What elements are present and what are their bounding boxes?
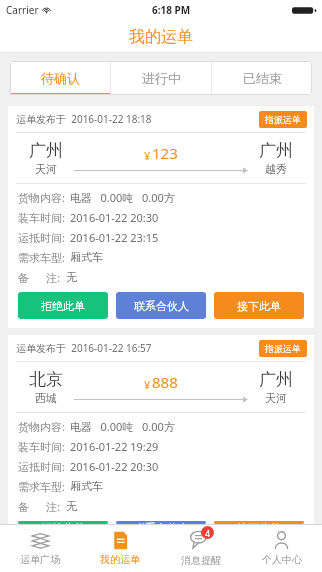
button[interactable]: 指派运单: [259, 111, 307, 128]
button[interactable]: 进行中: [111, 61, 211, 95]
staticText: 2016-01-22 20:30: [70, 210, 159, 225]
button[interactable]: 我的运单: [80, 524, 160, 572]
button[interactable]: 运单广场: [0, 524, 80, 572]
button[interactable]: 已结束: [212, 61, 312, 95]
staticText: 4: [205, 527, 211, 539]
staticText: 拒绝此单: [41, 299, 85, 313]
staticText: ¥: [144, 148, 151, 163]
staticText: 运单发布于 2016-01-22 16:57: [16, 341, 152, 355]
staticText: 2016-01-22 23:15: [70, 230, 159, 245]
staticText: 联系合伙人: [134, 521, 189, 524]
staticText: 接下此单: [237, 299, 281, 313]
staticText: 2016-01-22 19:29: [70, 439, 159, 454]
staticText: 电器 0.00吨 0.00方: [70, 190, 175, 205]
staticText: Carrier: [6, 3, 39, 17]
staticText: 指派运单: [265, 343, 301, 354]
staticText: 待确认: [41, 70, 80, 86]
staticText: 888: [152, 372, 178, 392]
staticText: 123: [152, 143, 178, 163]
staticText: 6:18 PM: [152, 3, 191, 17]
button[interactable]: 联系合伙人: [116, 521, 206, 524]
button[interactable]: 接下此单: [214, 521, 304, 524]
button[interactable]: 个人中心: [241, 524, 322, 572]
staticText: 个人中心: [262, 553, 302, 566]
staticText: 货物内容:: [18, 190, 65, 205]
staticText: 无: [66, 499, 77, 513]
staticText: 厢式车: [70, 479, 103, 493]
staticText: ¥: [144, 377, 151, 392]
staticText: 我的运单: [129, 27, 193, 47]
staticText: 天河: [265, 391, 287, 405]
staticText: 电器 0.00吨 0.00方: [70, 419, 175, 434]
staticText: 备 注:: [18, 499, 61, 514]
staticText: 备 注:: [18, 270, 61, 285]
staticText: 装车时间:: [18, 439, 65, 454]
staticText: 运抵时间:: [18, 230, 65, 245]
button[interactable]: 拒绝此单: [18, 521, 108, 524]
button[interactable]: 待确认: [10, 61, 110, 95]
staticText: 运抵时间:: [18, 459, 65, 474]
staticText: 厢式车: [70, 250, 103, 264]
staticText: 运单发布于 2016-01-22 18:18: [16, 112, 152, 126]
button[interactable]: 运单发布于 2016-01-22 18:18: [8, 106, 314, 328]
staticText: 消息提醒: [181, 554, 221, 567]
staticText: 广州: [259, 140, 293, 161]
staticText: 广州: [29, 140, 63, 161]
staticText: 货物内容:: [18, 419, 65, 434]
button[interactable]: 拒绝此单: [18, 292, 108, 319]
staticText: 无: [66, 270, 77, 284]
button[interactable]: 运单发布于 2016-01-22 16:57: [8, 335, 314, 524]
staticText: 广州: [259, 369, 293, 390]
staticText: 指派运单: [265, 114, 301, 125]
button[interactable]: 消息提醒: [160, 524, 241, 572]
staticText: 需求车型:: [18, 250, 65, 265]
staticText: 进行中: [142, 70, 181, 86]
staticText: 拒绝此单: [41, 521, 85, 524]
staticText: 越秀: [265, 162, 287, 176]
staticText: 已结束: [243, 70, 282, 86]
staticText: 北京: [29, 369, 63, 390]
staticText: 天河: [35, 162, 57, 176]
button[interactable]: 指派运单: [259, 340, 307, 357]
staticText: 装车时间:: [18, 210, 65, 225]
staticText: 需求车型:: [18, 479, 65, 494]
staticText: 2016-01-22 20:30: [70, 459, 159, 474]
staticText: 我的运单: [100, 553, 140, 566]
staticText: 西城: [35, 391, 57, 405]
staticText: 联系合伙人: [134, 299, 189, 313]
button[interactable]: 联系合伙人: [116, 292, 206, 319]
staticText: 运单广场: [20, 553, 60, 566]
staticText: 接下此单: [237, 521, 281, 524]
button[interactable]: 接下此单: [214, 292, 304, 319]
